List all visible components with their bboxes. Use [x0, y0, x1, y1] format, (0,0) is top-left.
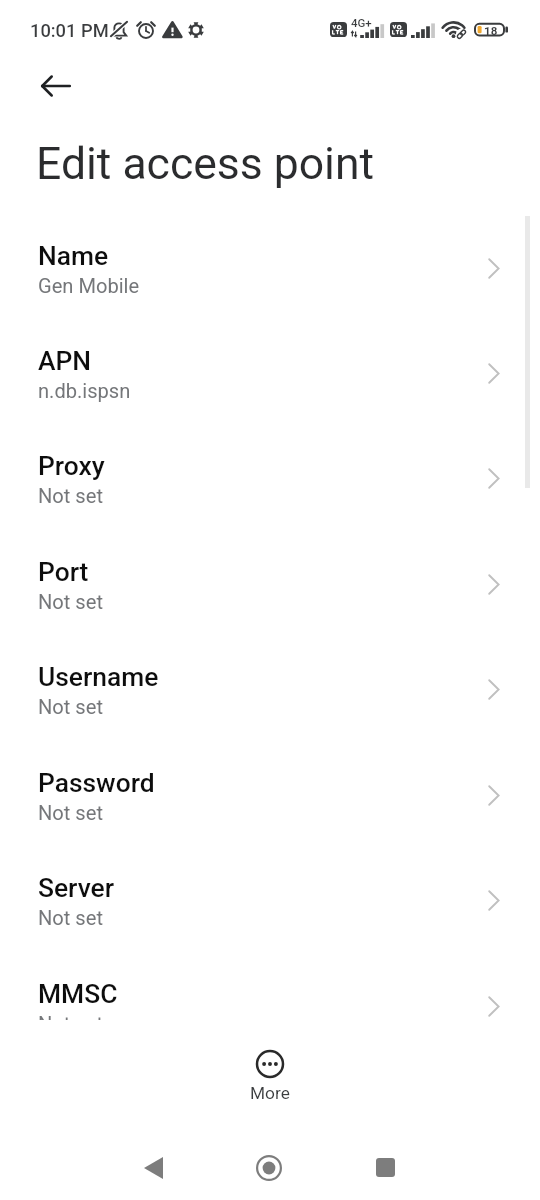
staticText: Port	[38, 557, 89, 588]
staticText: n.db.ispsn	[38, 379, 131, 403]
staticText: 4G+	[351, 16, 372, 29]
button[interactable]: Navigate up	[33, 63, 79, 109]
other: More options	[255, 1049, 285, 1079]
staticText: APN	[38, 346, 92, 377]
button[interactable]: Home	[238, 1137, 299, 1198]
button[interactable]: Username	[0, 634, 540, 739]
button[interactable]: Name	[0, 213, 540, 318]
staticText: MMSC	[38, 979, 118, 1010]
staticText: Gen Mobile	[38, 274, 140, 298]
button[interactable]: Back	[123, 1137, 184, 1198]
button[interactable]: Proxy	[0, 423, 540, 528]
staticText: Not set	[38, 801, 103, 825]
staticText: Edit access point	[36, 138, 375, 190]
staticText: Not set	[38, 590, 103, 614]
button[interactable]: MMSC	[0, 951, 540, 1056]
staticText: Server	[38, 873, 115, 904]
staticText: Name	[38, 241, 109, 272]
staticText: Proxy	[38, 451, 105, 482]
button[interactable]: Port	[0, 529, 540, 634]
staticText: 18	[484, 24, 498, 38]
button[interactable]: Password	[0, 740, 540, 845]
staticText: 10:01 PM	[30, 20, 109, 41]
button[interactable]: More options	[236, 1049, 304, 1103]
button[interactable]: Recent apps	[355, 1137, 416, 1198]
staticText: Not set	[38, 1012, 103, 1036]
staticText: More	[250, 1083, 290, 1103]
staticText: Username	[38, 662, 159, 693]
staticText: Not set	[38, 484, 103, 508]
button[interactable]: APN	[0, 318, 540, 423]
button[interactable]: Server	[0, 845, 540, 950]
staticText: Not set	[38, 906, 103, 930]
staticText: Not set	[38, 695, 103, 719]
staticText: Password	[38, 768, 155, 799]
